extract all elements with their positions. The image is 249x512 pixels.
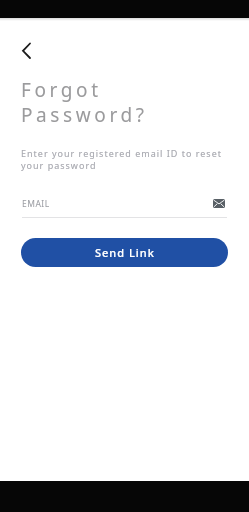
button[interactable] bbox=[14, 38, 40, 64]
staticText: EMAIL bbox=[22, 198, 50, 210]
staticText: Forgot Password? bbox=[21, 77, 148, 128]
button[interactable]: EMAIL bbox=[21, 192, 228, 218]
staticText: Enter your registered email ID to reset … bbox=[21, 147, 222, 171]
button[interactable]: Send Link bbox=[21, 238, 228, 267]
staticText: Send Link bbox=[95, 245, 155, 260]
